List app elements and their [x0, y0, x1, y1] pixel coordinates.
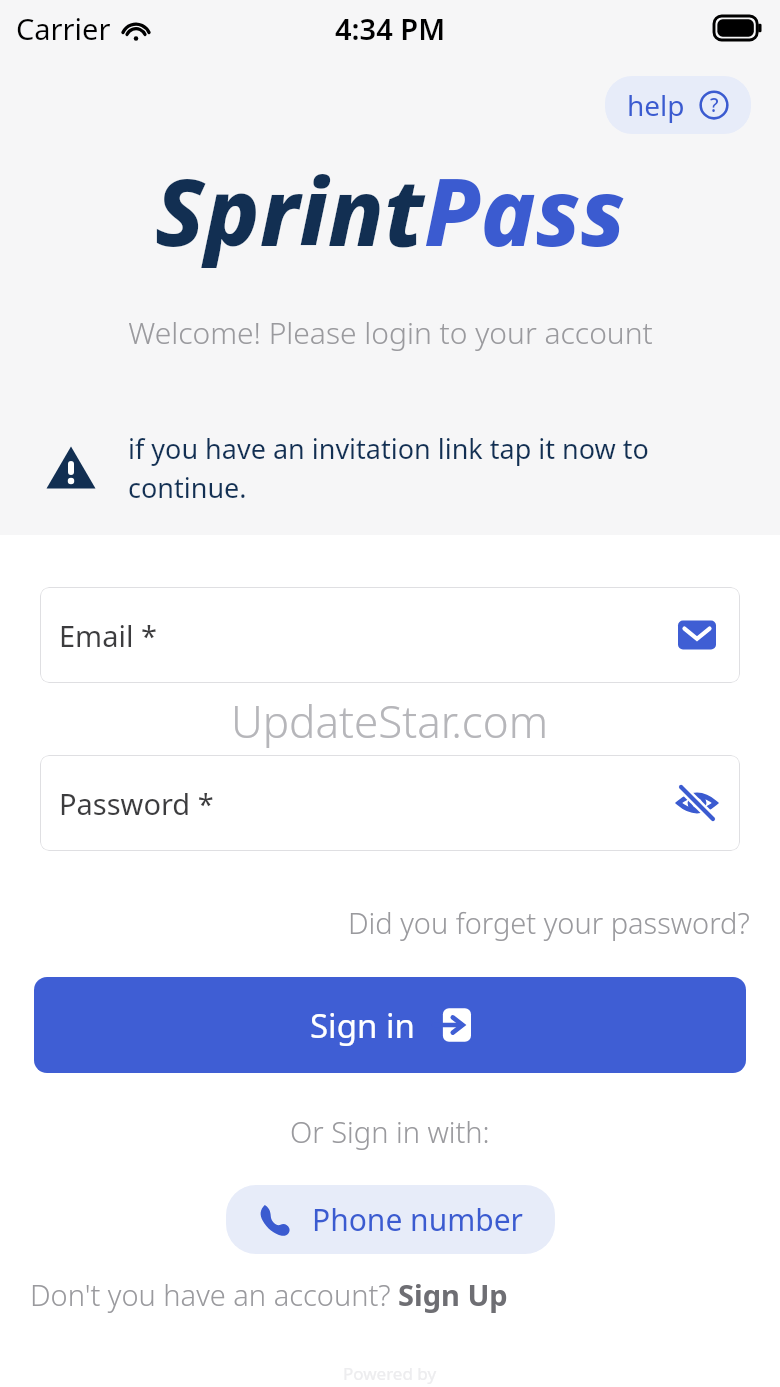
- staticText: Powered by: [343, 1362, 437, 1385]
- staticText: 4:34 PM: [335, 9, 446, 48]
- staticText: if you have an invitation link tap it no…: [128, 430, 686, 506]
- staticText: Welcome! Please login to your account: [128, 312, 653, 353]
- staticText: Password *: [59, 784, 214, 823]
- button[interactable]: Phone number: [226, 1185, 555, 1254]
- staticText: UpdateStar.com: [231, 691, 549, 751]
- staticText: Phone number: [312, 1199, 523, 1240]
- staticText: Email *: [59, 616, 157, 655]
- staticText: Or Sign in with:: [290, 1112, 490, 1151]
- button[interactable]: Password *: [40, 755, 740, 851]
- other: Help: [699, 90, 729, 120]
- staticText: Don't you have an account? Sign Up: [30, 1275, 508, 1314]
- staticText: SprintPass: [155, 148, 626, 273]
- staticText: Carrier: [16, 9, 111, 48]
- button[interactable]: Don't you have an account? Sign Up: [30, 1275, 508, 1314]
- button[interactable]: Show password: [674, 780, 720, 826]
- staticText: help: [627, 86, 685, 124]
- other: Email: [678, 616, 716, 654]
- button[interactable]: Sign in: [34, 977, 746, 1073]
- staticText: ?: [710, 92, 719, 118]
- button[interactable]: help: [605, 76, 751, 134]
- button[interactable]: Email *: [40, 587, 740, 683]
- staticText: Sign in: [310, 1003, 415, 1048]
- button[interactable]: Did you forget your password?: [348, 903, 750, 942]
